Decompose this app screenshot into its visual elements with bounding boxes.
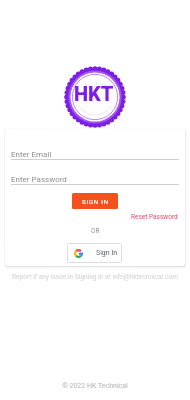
staticText: Enter Email	[11, 150, 52, 159]
other: HK Technical logo	[65, 67, 125, 127]
staticText: Enter Password	[11, 175, 67, 184]
button[interactable]: Reset Password	[131, 213, 178, 221]
staticText: SIGN IN	[82, 198, 109, 205]
staticText: OR	[91, 227, 100, 235]
button[interactable]: SIGN IN	[72, 193, 118, 209]
staticText: Sign In	[96, 249, 118, 257]
button[interactable]: Sign In	[67, 243, 122, 263]
staticText: © 2022 HK Technical	[0, 382, 190, 390]
button[interactable]: Enter Email	[11, 150, 179, 160]
staticText: HKT	[74, 82, 114, 105]
staticText: Report if any issue in Signing in at inf…	[0, 273, 190, 281]
button[interactable]: Enter Password	[11, 175, 179, 185]
